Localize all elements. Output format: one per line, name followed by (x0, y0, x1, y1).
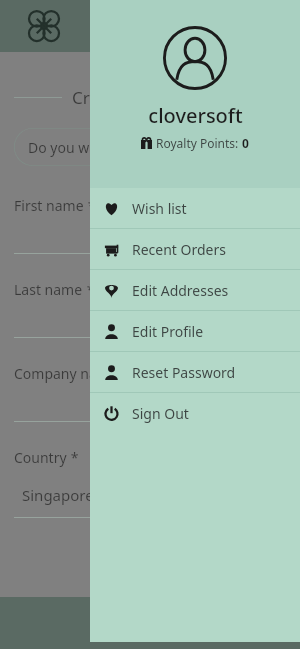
staticText: Singapore (22, 485, 94, 505)
staticText: First name (14, 196, 84, 215)
button[interactable]: Wish list (90, 188, 300, 228)
button[interactable]: Edit Addresses (90, 270, 300, 310)
staticText: Recent Orders (132, 240, 226, 259)
staticText: 0 (242, 135, 249, 151)
button[interactable]: Sign Out (90, 393, 300, 433)
staticText: * (67, 448, 79, 467)
staticText: Last name (14, 280, 83, 299)
staticText: Do you want to register? (28, 138, 189, 157)
staticText: * (84, 196, 96, 215)
button[interactable]: Recent Orders (90, 229, 300, 269)
staticText: Create an account (72, 86, 217, 108)
staticText: Reset Password (132, 363, 236, 382)
staticText: * (83, 280, 95, 299)
button[interactable]: Home (26, 8, 62, 44)
staticText: Edit Addresses (132, 281, 229, 300)
staticText: Wish list (132, 199, 187, 218)
staticText: cloversoft (148, 102, 243, 129)
button[interactable]: Reset Password (90, 352, 300, 392)
staticText: Edit Profile (132, 322, 204, 341)
staticText: Royalty Points: (156, 135, 242, 151)
staticText: Country (14, 448, 67, 467)
staticText: Sign Out (132, 404, 189, 423)
button[interactable]: Edit Profile (90, 311, 300, 351)
staticText: Company name (14, 364, 118, 383)
button[interactable]: Do you want to register? (14, 128, 264, 166)
